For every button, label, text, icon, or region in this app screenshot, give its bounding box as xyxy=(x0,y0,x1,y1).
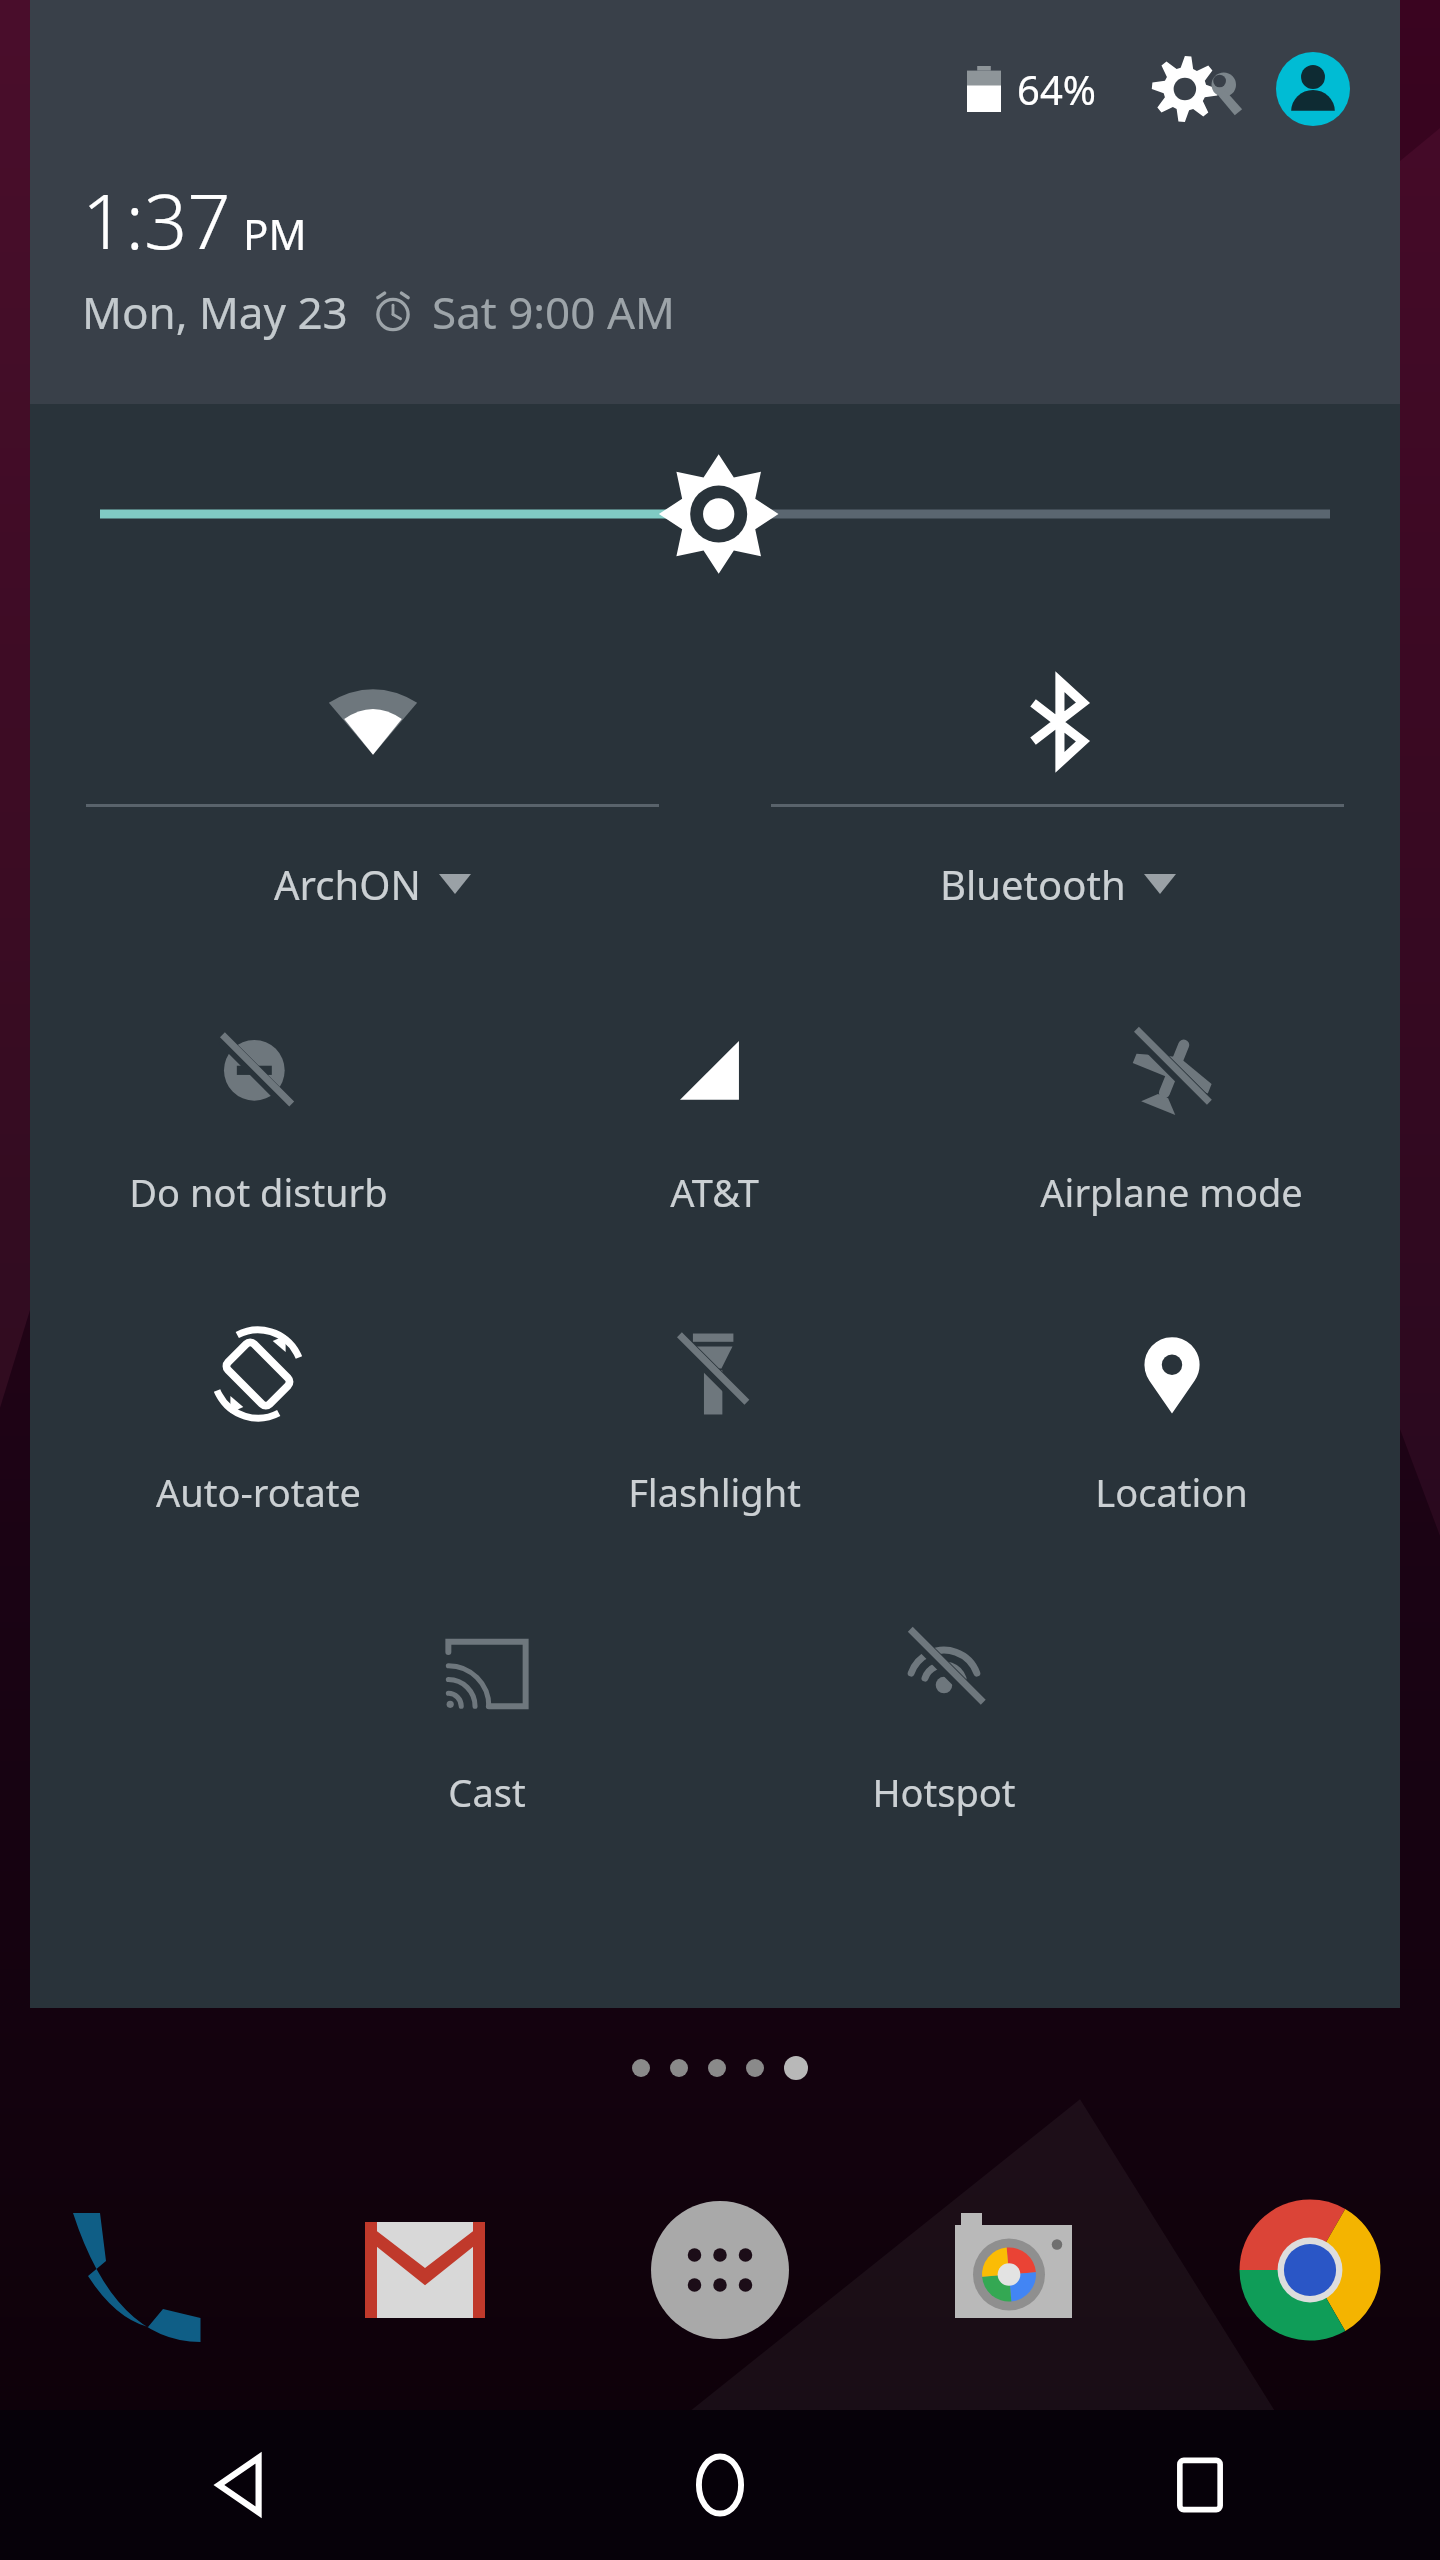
staticText: Location xyxy=(1095,1466,1248,1518)
staticText: Airplane mode xyxy=(1040,1166,1303,1218)
button[interactable]: User profile xyxy=(1276,52,1350,126)
staticText: Bluetooth xyxy=(940,857,1126,911)
button[interactable]: ArchON xyxy=(30,624,715,954)
button[interactable]: Chrome xyxy=(1220,2180,1400,2360)
button[interactable]: Hotspot xyxy=(715,1580,1172,1880)
staticText: Flashlight xyxy=(628,1466,801,1518)
button[interactable]: Gmail xyxy=(335,2180,515,2360)
staticText: Sat 9:00 AM xyxy=(432,282,675,342)
button[interactable]: Home xyxy=(630,2410,810,2560)
button[interactable]: Back xyxy=(150,2410,330,2560)
button[interactable]: Apps xyxy=(630,2180,810,2360)
staticText: Do not disturb xyxy=(129,1166,388,1218)
staticText: Auto-rotate xyxy=(156,1466,361,1518)
button[interactable]: Location xyxy=(943,1280,1400,1580)
button[interactable]: 1:37 xyxy=(82,168,231,272)
button[interactable]: Recent apps xyxy=(1110,2410,1290,2560)
staticText: Cast xyxy=(448,1766,526,1818)
button[interactable]: Flashlight xyxy=(486,1280,943,1580)
button[interactable]: AT&T xyxy=(486,980,943,1280)
button[interactable]: Do not disturb xyxy=(30,980,486,1280)
staticText: PM xyxy=(243,205,307,262)
button[interactable]: Auto-rotate xyxy=(30,1280,486,1580)
button[interactable]: Cast xyxy=(258,1580,715,1880)
staticText: Hotspot xyxy=(872,1766,1016,1818)
button[interactable]: Bluetooth xyxy=(715,624,1400,954)
button[interactable]: Settings xyxy=(1146,53,1254,125)
staticText: Mon, May 23 xyxy=(82,282,348,342)
staticText: AT&T xyxy=(670,1166,759,1218)
staticText: ArchON xyxy=(274,857,421,911)
button[interactable]: Phone xyxy=(40,2180,220,2360)
staticText: 64% xyxy=(1017,62,1096,116)
button[interactable]: Airplane mode xyxy=(943,980,1400,1280)
button[interactable]: Camera xyxy=(925,2180,1105,2360)
button[interactable]: Brightness xyxy=(30,404,1400,624)
